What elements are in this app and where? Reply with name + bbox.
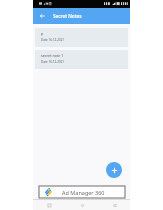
staticText: p [41, 31, 44, 36]
button[interactable]: Back [37, 11, 47, 21]
staticText: Secret Notes [53, 13, 82, 19]
staticText: Date 16-12-2021 [41, 60, 65, 64]
button[interactable]: Back [108, 200, 120, 210]
button[interactable]: Add note [106, 162, 122, 178]
staticText: secret note 1 [41, 53, 64, 58]
staticText: Ad Manager 360 [62, 189, 105, 196]
button[interactable]: Home [76, 200, 88, 210]
staticText: Date 16-12-2021 [41, 38, 65, 42]
button[interactable]: Ad Manager 360 [39, 186, 125, 198]
button[interactable]: Recent apps [43, 200, 55, 210]
button[interactable]: secret note 1 [35, 50, 128, 69]
button[interactable]: p [35, 28, 128, 47]
